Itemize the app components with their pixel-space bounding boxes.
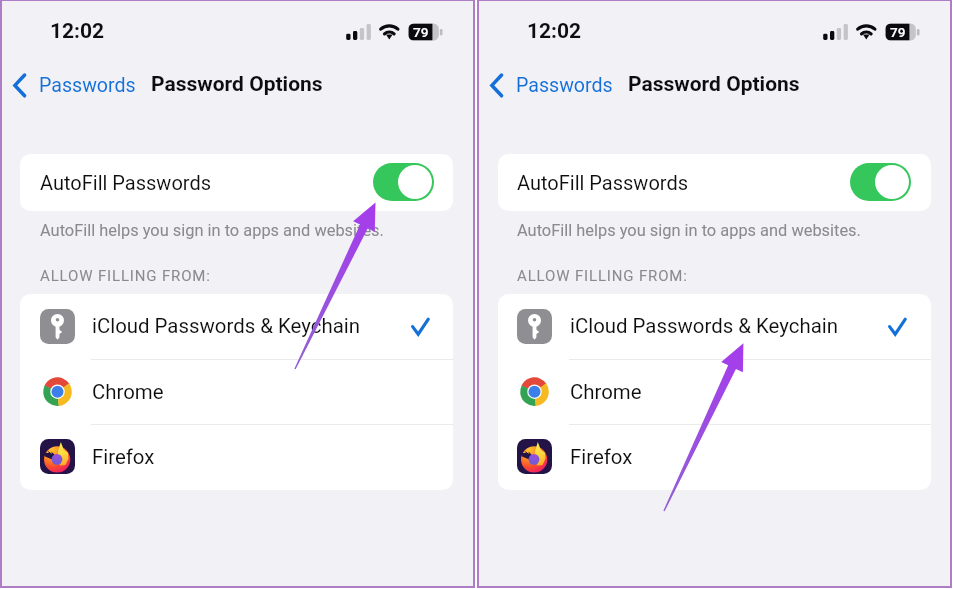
button[interactable] [20, 294, 453, 359]
button[interactable]: Passwords [8, 68, 140, 102]
button[interactable]: AutoFill Passwords toggle [373, 163, 434, 201]
staticText: iCloud Passwords & Keychain [92, 314, 360, 338]
button[interactable]: AutoFill Passwords toggle [850, 163, 911, 201]
staticText: AutoFill helps you sign in to apps and w… [40, 221, 384, 240]
button[interactable] [498, 154, 931, 211]
staticText: 12:02 [527, 19, 582, 44]
staticText: 12:02 [50, 19, 105, 44]
staticText: Password Options [151, 72, 323, 97]
staticText: 79 [890, 24, 906, 40]
button[interactable]: Passwords [485, 68, 617, 102]
button[interactable] [498, 294, 931, 359]
button[interactable] [20, 359, 453, 424]
staticText: AutoFill Passwords [40, 171, 211, 194]
button[interactable] [20, 154, 453, 211]
staticText: 79 [413, 24, 429, 40]
staticText: Firefox [570, 445, 633, 469]
staticText: Chrome [92, 380, 164, 404]
button[interactable] [498, 359, 931, 424]
staticText: Firefox [92, 445, 155, 469]
button[interactable] [498, 424, 931, 489]
staticText: ALLOW FILLING FROM: [40, 267, 211, 285]
staticText: iCloud Passwords & Keychain [570, 314, 838, 338]
staticText: Password Options [628, 72, 800, 97]
staticText: AutoFill Passwords [517, 171, 688, 194]
staticText: Passwords [39, 74, 136, 97]
staticText: AutoFill helps you sign in to apps and w… [517, 221, 861, 240]
staticText: Chrome [570, 380, 642, 404]
button[interactable] [20, 424, 453, 489]
staticText: Passwords [516, 74, 613, 97]
staticText: ALLOW FILLING FROM: [517, 267, 688, 285]
